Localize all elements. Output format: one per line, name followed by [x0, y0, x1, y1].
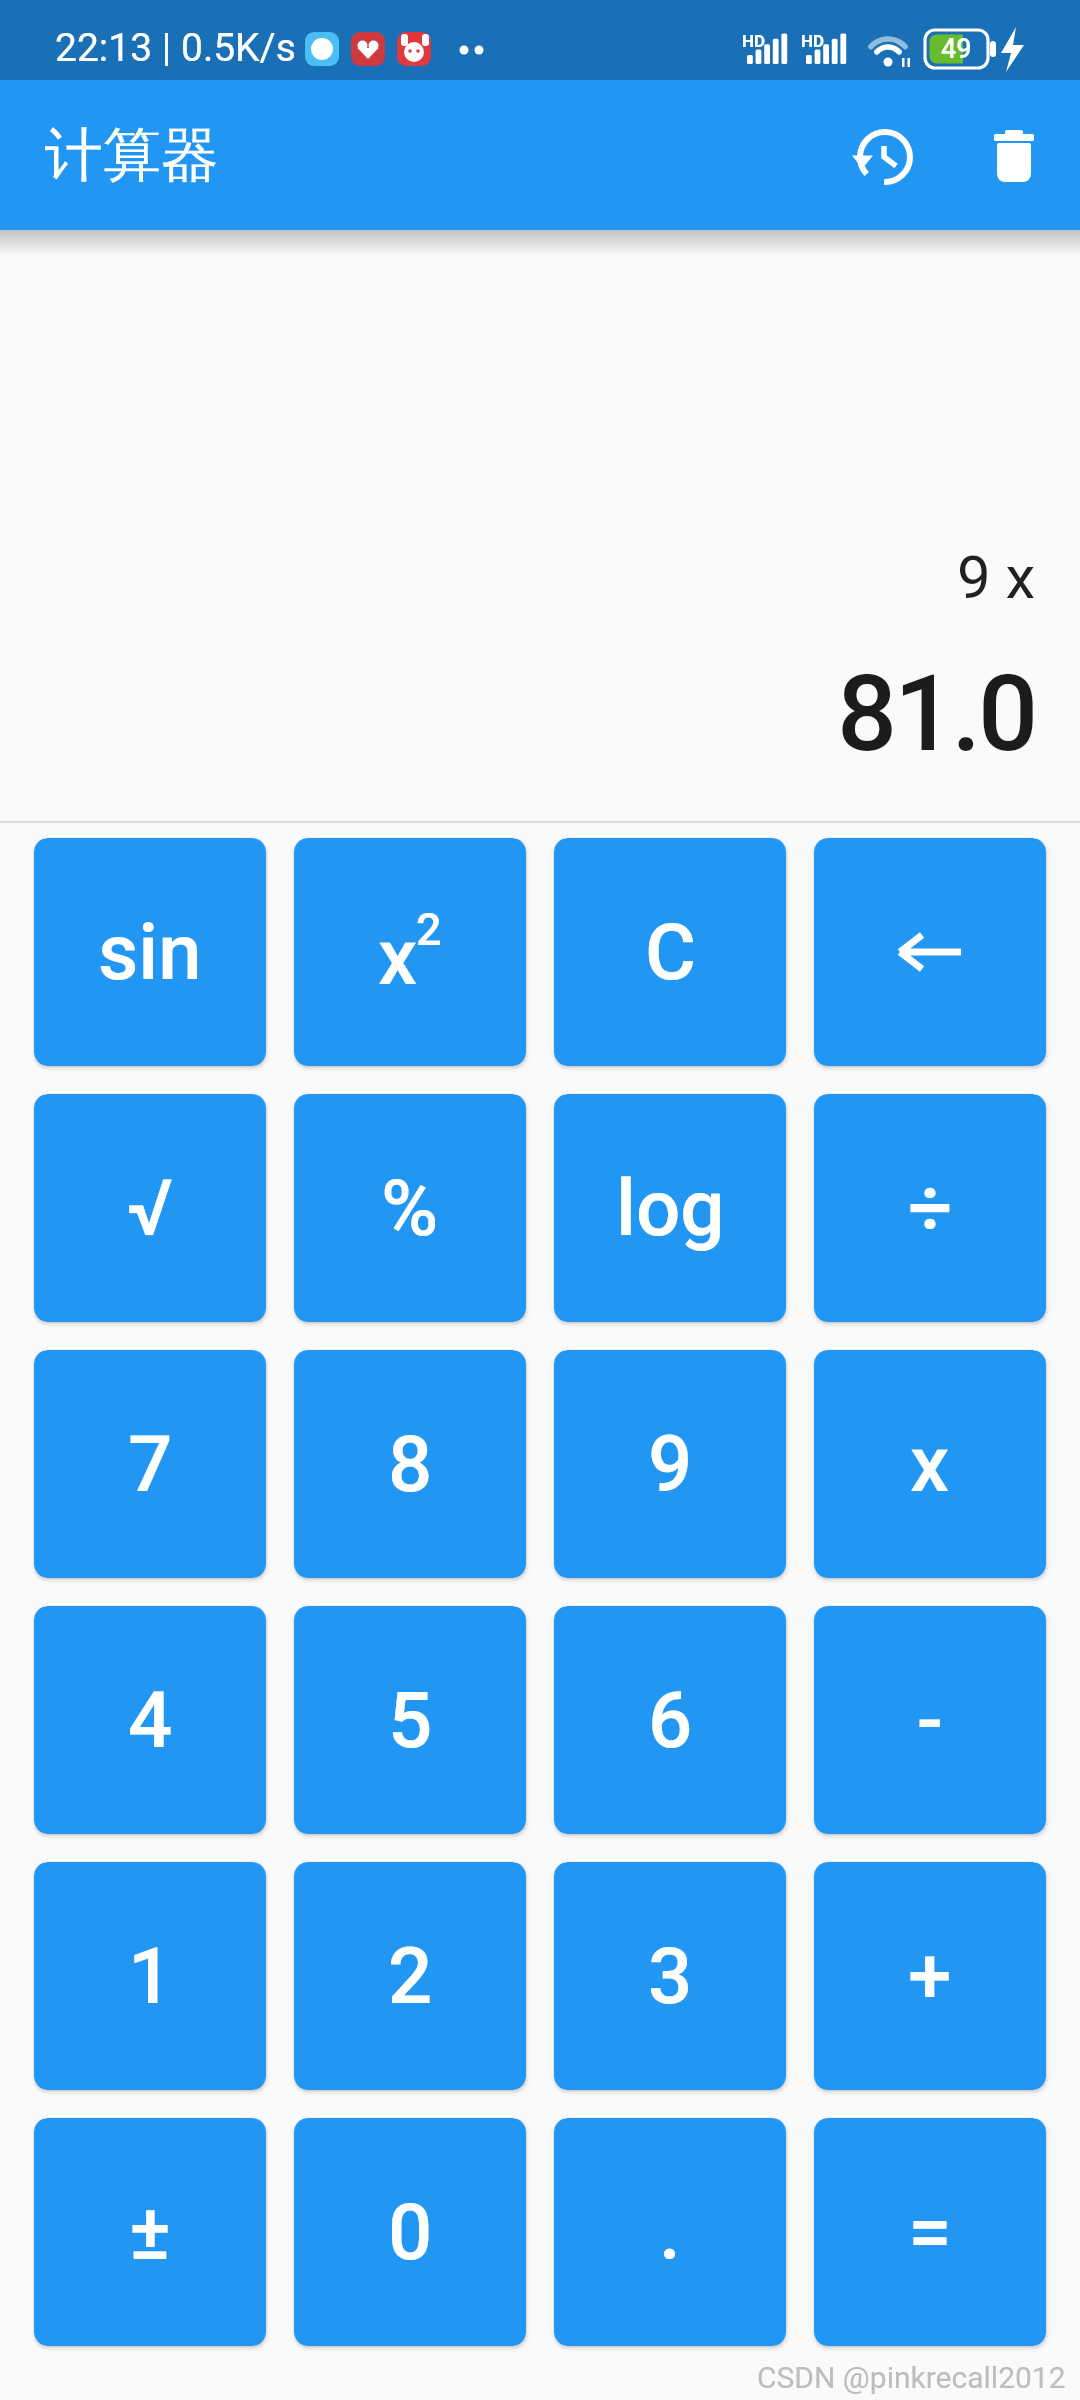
staticText: 3: [648, 1931, 693, 2022]
button[interactable]: x: [814, 1350, 1046, 1578]
staticText: 2: [416, 903, 442, 956]
button[interactable]: sin: [34, 838, 266, 1066]
button[interactable]: 6: [554, 1606, 786, 1834]
staticText: +: [908, 1931, 952, 2022]
button[interactable]: ÷: [814, 1094, 1046, 1322]
button[interactable]: -: [814, 1606, 1046, 1834]
staticText: ±: [129, 2187, 171, 2278]
staticText: √: [127, 1163, 173, 1254]
button[interactable]: √: [34, 1094, 266, 1322]
button[interactable]: [841, 113, 929, 201]
staticText: 0: [388, 2187, 433, 2278]
staticText: 1: [128, 1931, 173, 2022]
staticText: .: [659, 2187, 681, 2278]
staticText: 81.0: [837, 652, 1036, 776]
staticText: x: [910, 1419, 950, 1510]
staticText: log: [616, 1163, 725, 1254]
button[interactable]: 0: [294, 2118, 526, 2346]
staticText: x: [378, 912, 418, 1003]
staticText: 8: [388, 1419, 433, 1510]
button[interactable]: C: [554, 838, 786, 1066]
staticText: 7: [128, 1419, 173, 1510]
button[interactable]: =: [814, 2118, 1046, 2346]
button[interactable]: [969, 111, 1057, 199]
staticText: 2: [388, 1931, 433, 2022]
staticText: %: [381, 1163, 439, 1254]
staticText: ÷: [908, 1163, 953, 1254]
staticText: 计算器: [45, 119, 219, 192]
staticText: 9: [648, 1419, 693, 1510]
staticText: 9 x: [957, 542, 1036, 612]
staticText: 22:13 | 0.5K/s: [55, 25, 296, 71]
button[interactable]: ±: [34, 2118, 266, 2346]
staticText: sin: [98, 907, 202, 998]
button[interactable]: .: [554, 2118, 786, 2346]
button[interactable]: 7: [34, 1350, 266, 1578]
button[interactable]: %: [294, 1094, 526, 1322]
staticText: 49: [941, 33, 972, 65]
staticText: 6: [648, 1675, 693, 1766]
button[interactable]: 5: [294, 1606, 526, 1834]
button[interactable]: 4: [34, 1606, 266, 1834]
button[interactable]: log: [554, 1094, 786, 1322]
button[interactable]: 2: [294, 1862, 526, 2090]
button[interactable]: 3: [554, 1862, 786, 2090]
button[interactable]: +: [814, 1862, 1046, 2090]
button[interactable]: 9: [554, 1350, 786, 1578]
staticText: HD: [801, 31, 825, 51]
staticText: CSDN @pinkrecall2012: [757, 2360, 1066, 2395]
staticText: =: [908, 2187, 952, 2278]
button[interactable]: [814, 838, 1046, 1066]
button[interactable]: 8: [294, 1350, 526, 1578]
staticText: -: [917, 1675, 943, 1766]
staticText: 4: [128, 1675, 173, 1766]
staticText: C: [645, 907, 696, 998]
staticText: 5: [388, 1675, 433, 1766]
button[interactable]: 1: [34, 1862, 266, 2090]
staticText: HD: [742, 31, 766, 51]
button[interactable]: x: [294, 838, 526, 1066]
